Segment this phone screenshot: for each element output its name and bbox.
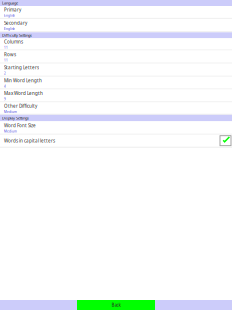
- staticText: 2: [4, 71, 6, 75]
- staticText: Back: [111, 302, 120, 308]
- staticText: Medium: [4, 129, 17, 133]
- button[interactable]: Word Font Size: [0, 121, 232, 135]
- button[interactable]: Back: [77, 300, 155, 310]
- button[interactable]: Starting Letters: [0, 64, 232, 77]
- staticText: Word Font Size: [4, 122, 36, 128]
- staticText: Words in capital letters: [4, 138, 55, 144]
- button[interactable]: Rows: [0, 50, 232, 64]
- button[interactable]: Secondary: [0, 19, 232, 32]
- button[interactable]: Columns: [0, 38, 232, 50]
- staticText: 9: [4, 97, 6, 101]
- button[interactable]: Words in capital letters: [0, 135, 232, 148]
- staticText: Display Settings: [2, 115, 29, 121]
- staticText: Starting Letters: [4, 64, 39, 71]
- staticText: Medium: [4, 110, 17, 114]
- staticText: English: [4, 13, 15, 18]
- staticText: Secondary: [4, 20, 27, 26]
- staticText: Min Word Length: [4, 77, 42, 84]
- staticText: 11: [4, 58, 8, 62]
- staticText: Language: [2, 0, 18, 6]
- staticText: Columns: [4, 39, 23, 45]
- button[interactable]: Max Word Length: [0, 89, 232, 102]
- staticText: Other Difficulty: [4, 103, 37, 109]
- staticText: Rows: [4, 51, 16, 58]
- staticText: Primary: [4, 7, 21, 13]
- button[interactable]: Primary: [0, 6, 232, 19]
- button[interactable]: Other Difficulty: [0, 102, 232, 115]
- staticText: Max Word Length: [4, 90, 43, 96]
- staticText: English: [4, 27, 15, 31]
- button[interactable]: Min Word Length: [0, 77, 232, 89]
- staticText: 11: [4, 45, 8, 50]
- staticText: Difficulty Settings: [2, 33, 32, 38]
- staticText: 4: [4, 84, 6, 88]
